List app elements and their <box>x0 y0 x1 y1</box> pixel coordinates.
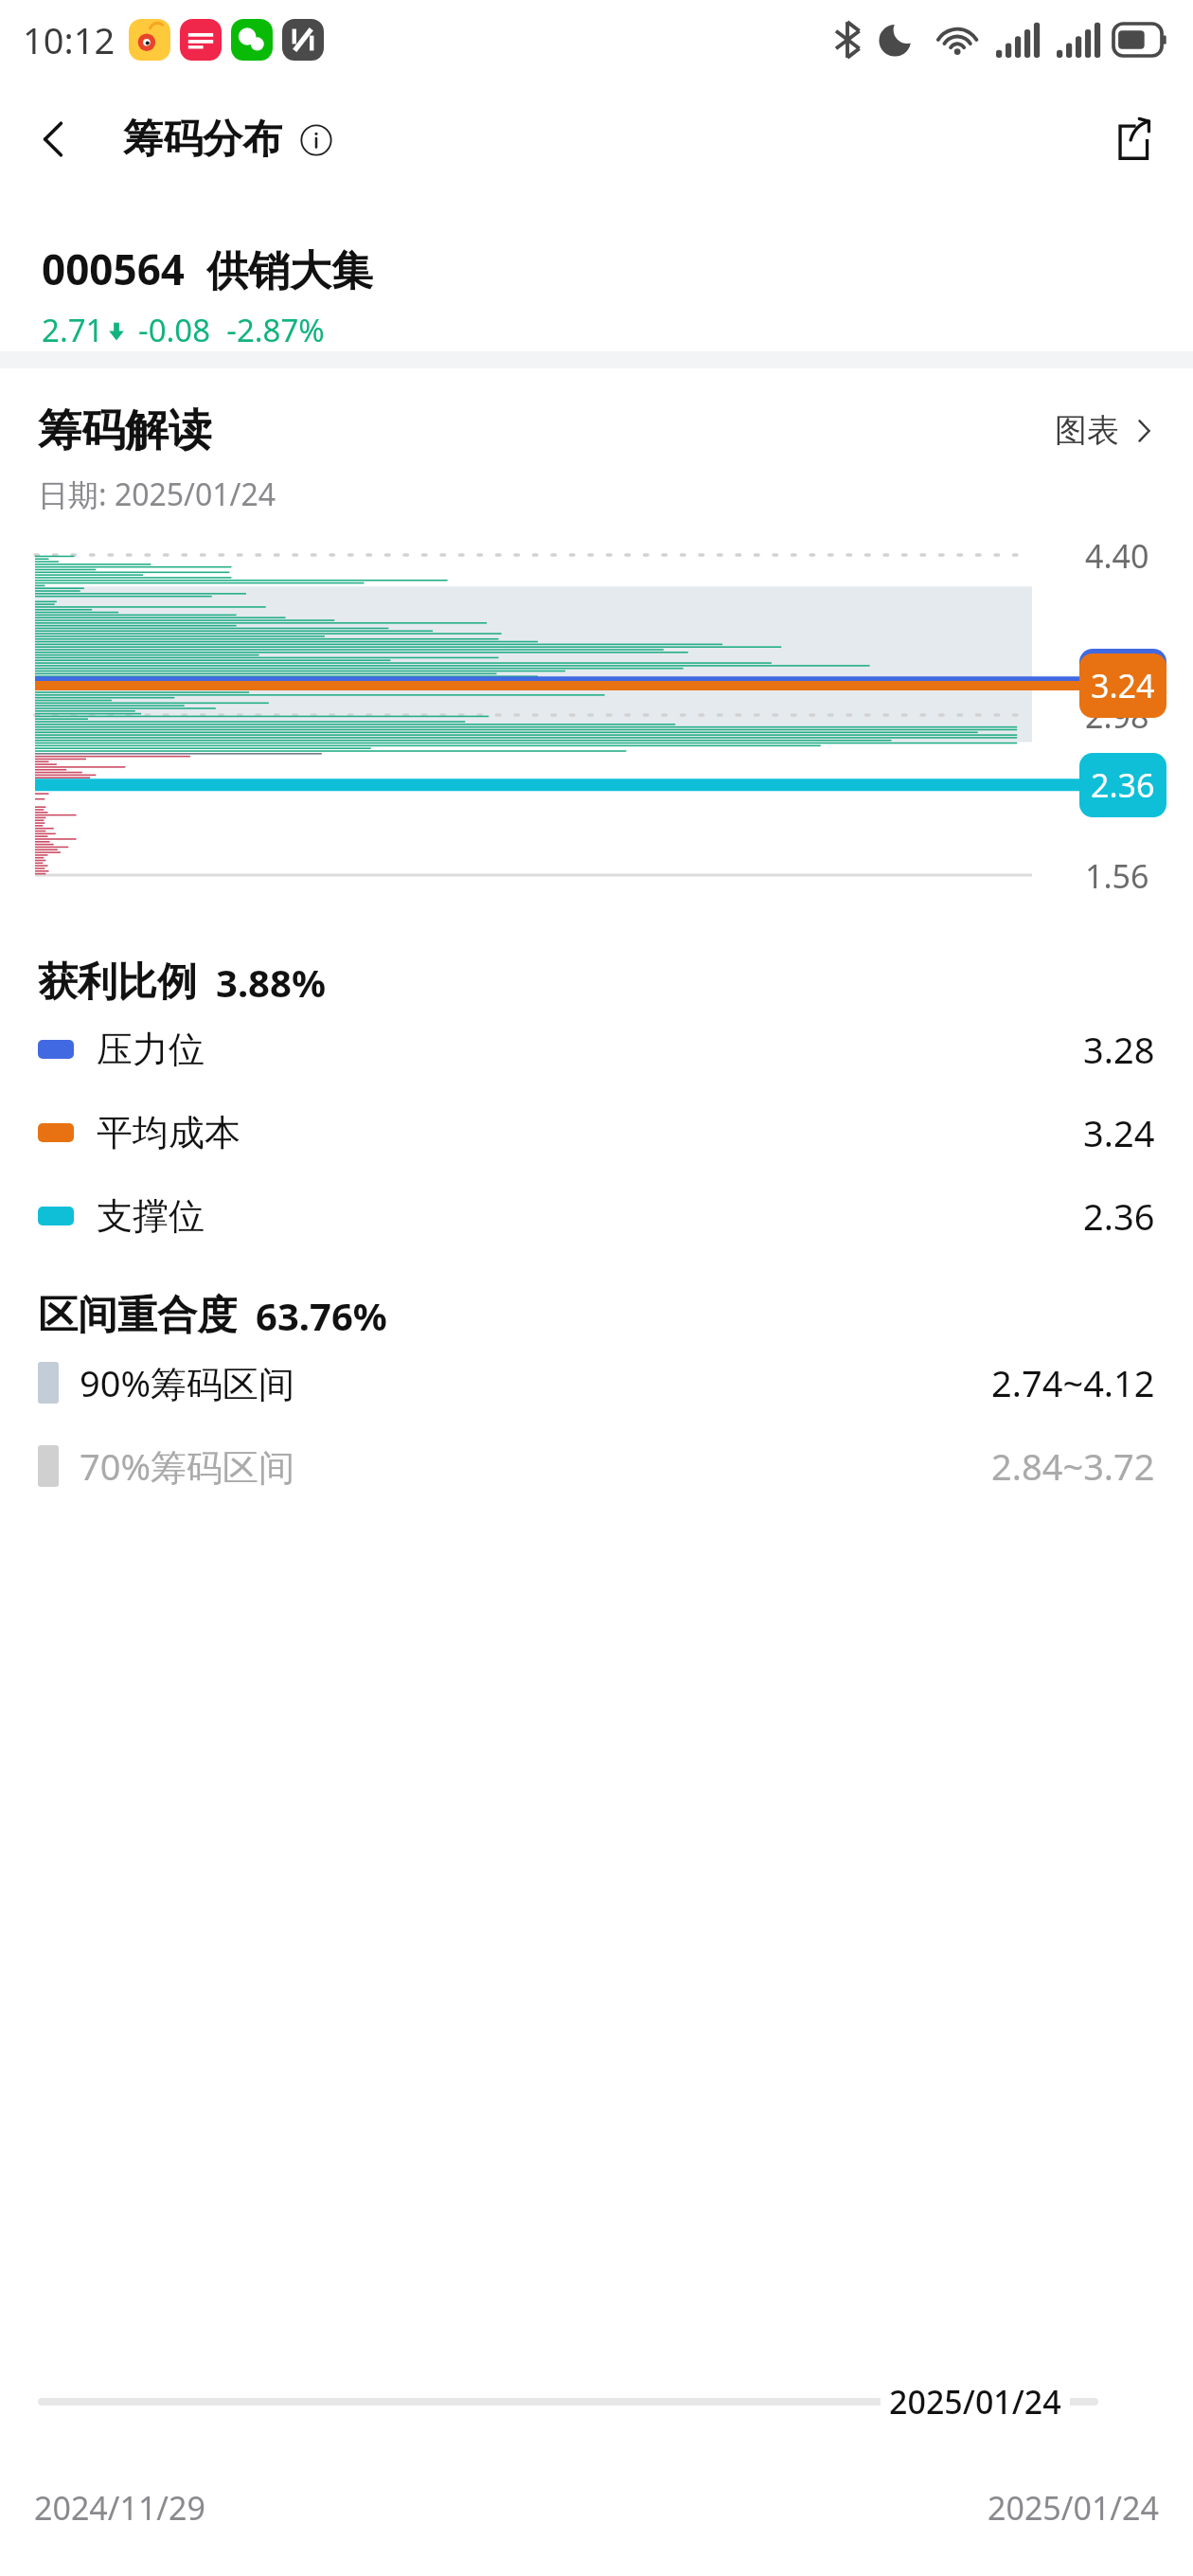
button[interactable]: 支撑位 <box>0 1174 1193 1258</box>
staticText: 63.76% <box>256 1290 387 1341</box>
staticText: 3.28 <box>1083 1025 1155 1074</box>
staticText: 区间重合度 <box>38 1291 237 1341</box>
staticText: 2.36 <box>1091 763 1155 807</box>
button[interactable]: 90%筹码区间 <box>0 1341 1193 1424</box>
button[interactable]: 压力位 <box>0 1008 1193 1091</box>
staticText: 筹码解读 <box>38 403 212 458</box>
staticText: 图表 <box>1055 410 1119 451</box>
staticText: 70%筹码区间 <box>80 1441 295 1491</box>
staticText: 2.74~4.12 <box>991 1358 1155 1407</box>
staticText: 000564 供销大集 <box>42 241 373 297</box>
button[interactable]: 70%筹码区间 <box>0 1424 1193 1508</box>
button[interactable]: 2025/01/24 <box>881 2358 1070 2445</box>
staticText: 支撑位 <box>97 1193 205 1239</box>
staticText: 2025/01/24 <box>988 2486 1159 2530</box>
staticText: 3.24 <box>1083 1108 1155 1157</box>
staticText: -0.08 -2.87% <box>138 309 325 351</box>
staticText: 2.36 <box>1083 1191 1155 1241</box>
staticText: 平均成本 <box>97 1110 240 1155</box>
staticText: 2.98 <box>1085 694 1149 738</box>
staticText: 2.71 <box>42 309 104 351</box>
button[interactable]: 平均成本 <box>0 1091 1193 1174</box>
button[interactable]: Back <box>19 105 87 173</box>
staticText: 10:12 <box>23 15 116 64</box>
staticText: 日期: 2025/01/24 <box>38 474 276 515</box>
button[interactable]: Info <box>297 121 335 159</box>
staticText: 2025/01/24 <box>889 2380 1061 2424</box>
staticText: 90%筹码区间 <box>80 1358 295 1407</box>
staticText: 筹码分布 <box>123 115 282 165</box>
staticText: 3.88% <box>216 957 326 1008</box>
staticText: 1.56 <box>1085 854 1149 898</box>
staticText: 3.24 <box>1091 664 1155 707</box>
button[interactable]: 图表 <box>1045 402 1166 458</box>
staticText: 获利比例 <box>38 957 197 1008</box>
staticText: 2.84~3.72 <box>991 1441 1155 1491</box>
staticText: 2024/11/29 <box>34 2486 205 2530</box>
staticText: 3.28 <box>1091 659 1155 703</box>
staticText: 压力位 <box>97 1027 205 1072</box>
button[interactable]: Share <box>1095 102 1168 176</box>
staticText: 4.40 <box>1085 534 1149 578</box>
